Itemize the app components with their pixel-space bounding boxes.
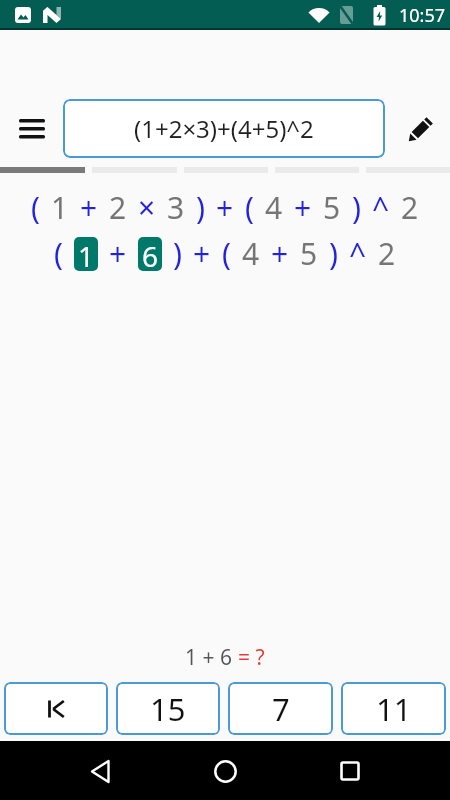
staticText: ( [54, 233, 63, 274]
button[interactable] [0, 99, 63, 158]
button[interactable] [203, 749, 247, 793]
staticText: ) [173, 233, 182, 274]
staticText: 4 [265, 187, 283, 228]
staticText: 5 [300, 233, 318, 274]
staticText: + [80, 187, 98, 228]
staticText: + [109, 233, 127, 274]
staticText: ) [352, 187, 361, 228]
staticText: ( [222, 233, 231, 274]
button[interactable]: (1+2×3)+(4+5)^2 [63, 99, 385, 158]
staticText: + [294, 187, 312, 228]
staticText: 1 [78, 237, 95, 271]
staticText: + [216, 187, 234, 228]
button[interactable]: 15 [116, 682, 220, 735]
staticText: 11 [376, 688, 412, 730]
staticText: 1 + 6 [185, 643, 238, 672]
staticText: (1+2×3)+(4+5)^2 [134, 112, 314, 145]
staticText: 2 [401, 187, 419, 228]
button[interactable] [385, 99, 450, 158]
staticText: 5 [323, 187, 341, 228]
staticText: 15 [150, 688, 186, 730]
button[interactable]: 11 [341, 682, 446, 735]
staticText: + [271, 233, 289, 274]
staticText: 3 [167, 187, 185, 228]
staticText: = ? [238, 643, 265, 672]
staticText: + [193, 233, 211, 274]
button[interactable] [78, 749, 122, 793]
button[interactable] [328, 749, 372, 793]
staticText: 7 [272, 688, 290, 730]
staticText: 2 [378, 233, 396, 274]
staticText: 10:57 [399, 3, 446, 28]
staticText: ^ [372, 187, 390, 228]
staticText: ) [196, 187, 205, 228]
staticText: 1 [51, 187, 69, 228]
staticText: ( [31, 187, 40, 228]
staticText: ) [329, 233, 338, 274]
staticText: ^ [349, 233, 367, 274]
staticText: ( [245, 187, 254, 228]
staticText: × [138, 187, 156, 228]
staticText: 4 [242, 233, 260, 274]
button[interactable] [4, 682, 108, 735]
staticText: 2 [109, 187, 127, 228]
button[interactable]: 7 [228, 682, 333, 735]
staticText: 6 [142, 237, 159, 271]
